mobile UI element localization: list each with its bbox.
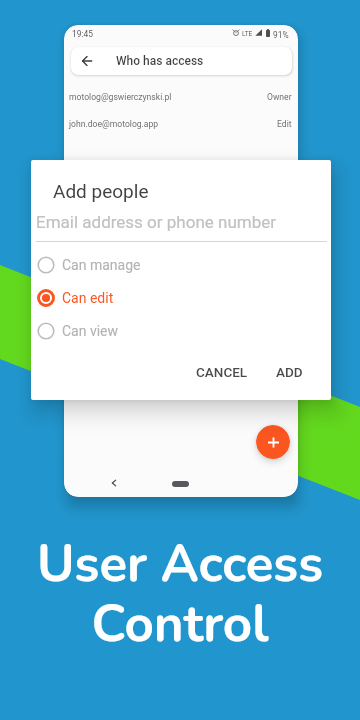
staticText: Who has access xyxy=(116,54,204,68)
staticText: LTE xyxy=(242,30,253,38)
button[interactable]: Back xyxy=(102,471,126,495)
button[interactable]: Add person xyxy=(256,425,290,459)
staticText: Can view xyxy=(62,323,119,339)
staticText: 19:45 xyxy=(72,29,93,39)
button[interactable]: Can edit xyxy=(31,282,331,314)
staticText: motolog@gswierczynski.pl xyxy=(69,92,172,102)
staticText: User Access xyxy=(0,529,360,599)
staticText: ADD xyxy=(276,364,303,380)
staticText: Can manage xyxy=(62,257,141,273)
button[interactable]: CANCEL xyxy=(190,357,254,387)
button[interactable]: motolog@gswierczynski.pl xyxy=(64,83,298,111)
button[interactable]: Navigate up xyxy=(74,48,99,73)
staticText: Email address or phone number xyxy=(36,212,276,232)
button[interactable]: Navigate up xyxy=(71,47,292,75)
button[interactable]: Home xyxy=(163,472,198,495)
button[interactable]: Can manage xyxy=(31,249,331,281)
staticText: 91% xyxy=(273,30,289,40)
button[interactable]: Can view xyxy=(31,315,331,347)
staticText: john.doe@motolog.app xyxy=(69,119,159,129)
staticText: Edit xyxy=(277,119,292,129)
staticText: CANCEL xyxy=(196,364,248,380)
staticText: Can edit xyxy=(62,290,114,306)
staticText: Add people xyxy=(53,180,149,202)
button[interactable]: ADD xyxy=(270,357,309,387)
staticText: Control xyxy=(0,589,360,659)
button[interactable]: john.doe@motolog.app xyxy=(64,110,298,138)
staticText: Owner xyxy=(267,92,292,102)
